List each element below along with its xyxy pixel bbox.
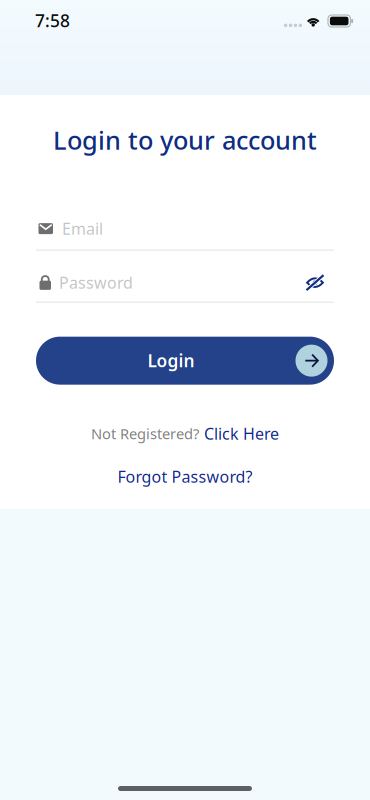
button[interactable]: Email	[36, 218, 334, 251]
staticText: 7:58	[35, 9, 70, 32]
button[interactable]: Login	[36, 337, 334, 385]
staticText: Email	[62, 218, 103, 239]
button[interactable]: Forgot Password?	[0, 465, 370, 489]
staticText: Click Here	[204, 423, 279, 444]
button[interactable]: Password	[36, 272, 296, 294]
staticText: Login	[147, 349, 194, 372]
button[interactable]: Show password	[296, 271, 334, 295]
button[interactable]: Not Registered?	[0, 422, 370, 446]
staticText: Forgot Password?	[117, 466, 252, 487]
staticText: Password	[59, 272, 133, 293]
staticText: Login to your account	[53, 123, 317, 157]
staticText: Not Registered?	[91, 424, 199, 443]
